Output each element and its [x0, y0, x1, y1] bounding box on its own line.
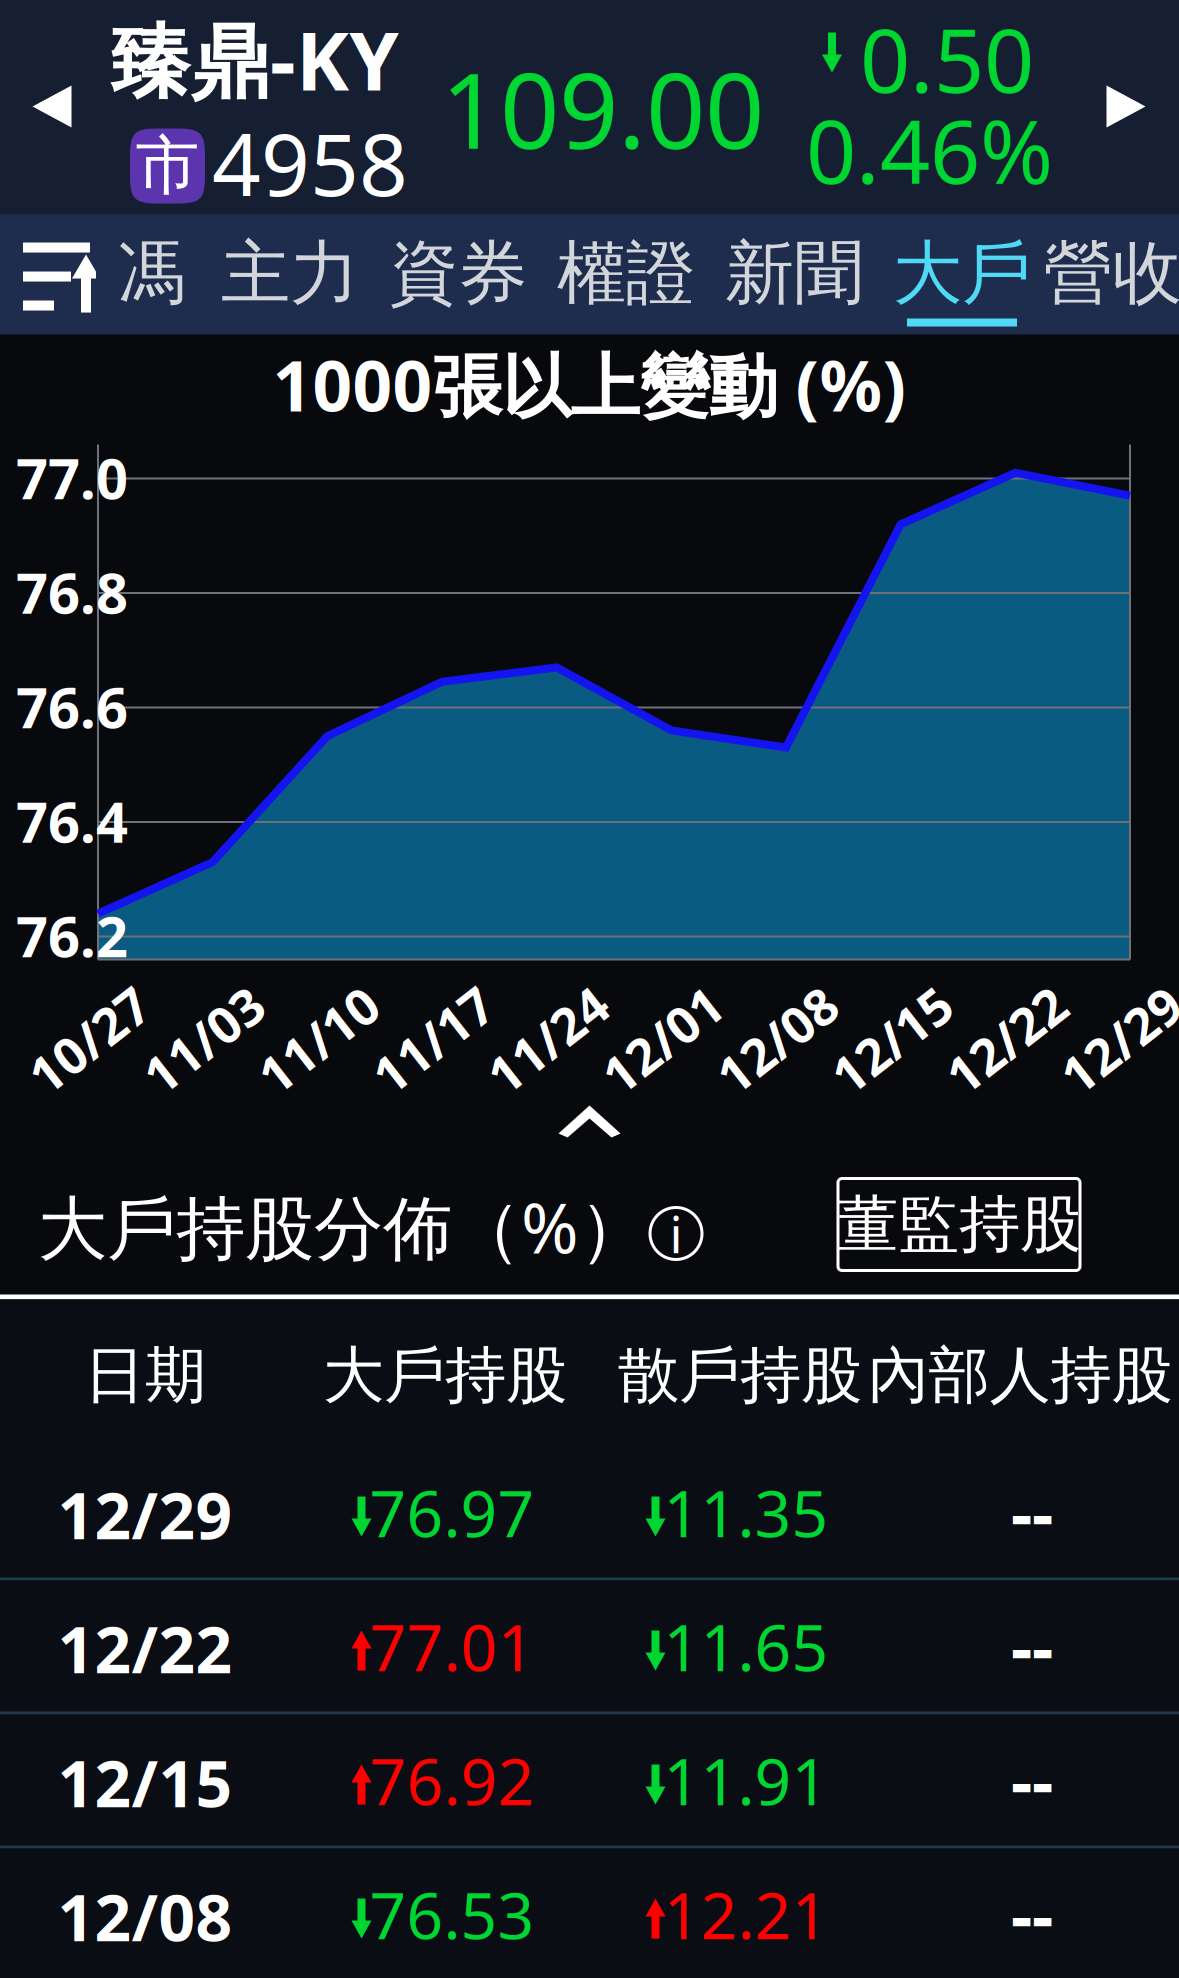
staticText: 內部人持股	[867, 1338, 1172, 1413]
staticText: 大戶	[893, 231, 1031, 316]
staticText: 市	[135, 127, 199, 205]
staticText: 臻鼎-KY	[110, 6, 399, 113]
staticText: 11/24	[479, 1006, 616, 1073]
staticText: 12/22	[938, 1006, 1075, 1073]
staticText: 11.65	[663, 1604, 828, 1689]
staticText: 日期	[84, 1338, 206, 1413]
staticText: 0.50	[860, 0, 1034, 117]
button[interactable]: 馮	[96, 214, 206, 334]
button[interactable]: 大戶	[878, 214, 1046, 334]
staticText: 4958	[212, 106, 408, 220]
staticText: 76.97	[369, 1470, 534, 1555]
staticText: 權證	[557, 231, 695, 316]
staticText: 11.91	[663, 1738, 828, 1823]
staticText: 11/03	[135, 1006, 272, 1073]
staticText: 76.4	[16, 784, 128, 858]
button[interactable]: Information	[640, 1197, 712, 1269]
staticText: 董監持股	[837, 1187, 1081, 1262]
staticText: 11.35	[663, 1470, 828, 1555]
staticText: 77.01	[369, 1604, 534, 1689]
button[interactable]: Collapse chart	[0, 1087, 1179, 1153]
button[interactable]: 營收	[1046, 214, 1179, 334]
staticText: --	[1011, 1602, 1053, 1691]
button[interactable]: 資券	[374, 214, 542, 334]
staticText: 11/10	[250, 1006, 387, 1073]
button[interactable]: 董監持股	[838, 1178, 1080, 1270]
staticText: 0.46%	[806, 91, 1053, 208]
staticText: 76.92	[369, 1738, 534, 1823]
staticText: 資券	[389, 231, 527, 316]
staticText: 77.0	[16, 440, 128, 515]
staticText: 11/17	[364, 1006, 501, 1073]
staticText: 12/22	[57, 1606, 232, 1691]
staticText: 76.8	[16, 555, 128, 629]
staticText: --	[1011, 1736, 1053, 1825]
staticText: --	[1011, 1468, 1053, 1557]
staticText: 主力	[221, 231, 359, 316]
staticText: 76.6	[16, 669, 128, 744]
staticText: 新聞	[725, 231, 863, 316]
button[interactable]: 新聞	[710, 214, 878, 334]
staticText: 109.00	[441, 39, 764, 177]
staticText: 散戶持股	[618, 1338, 862, 1413]
staticText: 76.53	[369, 1872, 534, 1957]
staticText: i	[669, 1200, 682, 1267]
button[interactable]: 12/08	[0, 1848, 1179, 1978]
staticText: 大戶持股分佈（%）	[38, 1180, 648, 1273]
button[interactable]: Next stock	[1074, 0, 1179, 214]
staticText: 12/29	[57, 1472, 232, 1557]
staticText: 12/15	[823, 1006, 960, 1073]
staticText: --	[1011, 1870, 1053, 1959]
staticText: 大戶持股	[323, 1338, 567, 1413]
button[interactable]: 12/29	[0, 1446, 1179, 1577]
button[interactable]: Sort	[0, 214, 96, 334]
button[interactable]: 主力	[206, 214, 374, 334]
staticText: 10/27	[20, 1006, 157, 1073]
button[interactable]: 12/22	[0, 1580, 1179, 1711]
staticText: 12.21	[663, 1872, 828, 1957]
staticText: 76.2	[16, 898, 128, 973]
staticText: 12/29	[1052, 1006, 1179, 1073]
button[interactable]: Previous stock	[0, 0, 105, 214]
staticText: 12/08	[708, 1006, 845, 1073]
button[interactable]: 12/15	[0, 1714, 1179, 1845]
button[interactable]: 權證	[542, 214, 710, 334]
staticText: 營收	[1043, 231, 1179, 316]
staticText: 1000張以上變動 (%)	[272, 338, 906, 431]
staticText: 12/08	[57, 1874, 232, 1959]
staticText: 12/01	[594, 1006, 731, 1073]
staticText: 12/15	[57, 1740, 232, 1825]
staticText: 馮	[116, 231, 185, 316]
